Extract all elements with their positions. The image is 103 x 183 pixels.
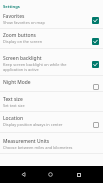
staticText: Display on the screen	[3, 39, 43, 44]
staticText: Text size	[3, 96, 23, 103]
staticText: Measurement Units	[3, 138, 50, 145]
button[interactable]: Screen backlight	[0, 49, 103, 76]
staticText: Set text size	[3, 103, 25, 108]
button[interactable]: Text size	[0, 92, 103, 112]
staticText: Display position always in center	[3, 122, 63, 127]
button[interactable]: Measurement Units	[0, 133, 103, 154]
button[interactable]: Home	[40, 166, 60, 183]
button[interactable]: Recents	[69, 166, 89, 183]
staticText: Zoom buttons	[3, 32, 36, 39]
button[interactable]: Back	[13, 166, 33, 183]
button[interactable]: Location	[0, 112, 103, 133]
staticText: Show favorites on map	[3, 20, 45, 25]
staticText: Settings	[3, 4, 20, 10]
staticText: Favorites	[3, 13, 25, 20]
button[interactable]: Night Mode	[0, 76, 103, 92]
staticText: Choose between miles and kilometres	[3, 145, 73, 150]
staticText: Screen backlight	[3, 55, 42, 62]
staticText: Keep screen backlight on while the	[3, 62, 67, 67]
staticText: Location	[3, 115, 24, 122]
staticText: application is active	[3, 67, 39, 72]
button[interactable]: Favorites	[0, 13, 103, 29]
staticText: Night Mode	[3, 79, 31, 86]
button[interactable]: Zoom buttons	[0, 29, 103, 49]
